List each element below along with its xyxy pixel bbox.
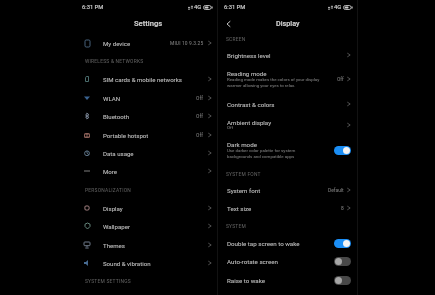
- button[interactable]: Raise to wake: [218, 271, 357, 289]
- button[interactable]: WLAN: [71, 89, 217, 107]
- button[interactable]: Brightness level: [218, 46, 357, 64]
- staticText: PERSONALIZATION: [85, 187, 132, 193]
- button[interactable]: Bluetooth: [71, 107, 217, 125]
- staticText: Off: [196, 95, 204, 101]
- staticText: Display: [103, 205, 208, 212]
- staticText: Off: [196, 132, 204, 138]
- staticText: Double tap screen to wake: [227, 240, 357, 247]
- staticText: SYSTEM FONT: [226, 171, 261, 177]
- button[interactable]: Back: [223, 18, 234, 29]
- staticText: WLAN: [103, 95, 196, 102]
- staticText: Data usage: [103, 150, 208, 157]
- staticText: Bluetooth: [103, 113, 196, 120]
- staticText: Display: [276, 19, 300, 27]
- staticText: SCREEN: [226, 36, 246, 42]
- staticText: Off: [227, 125, 234, 130]
- staticText: 6:31 PM: [224, 4, 246, 11]
- button[interactable]: Wallpaper: [71, 217, 217, 235]
- staticText: Reading mode: [227, 70, 357, 77]
- staticText: 6:31 PM: [82, 4, 104, 11]
- staticText: Text size: [227, 205, 357, 212]
- staticText: Sound & vibration: [103, 260, 208, 267]
- staticText: Raise to wake: [227, 277, 357, 284]
- staticText: Auto-rotate screen: [227, 258, 357, 265]
- button[interactable]: Auto-rotate screen: [218, 252, 357, 270]
- staticText: Ambient display: [227, 119, 357, 126]
- staticText: 8: [341, 205, 344, 211]
- staticText: Off: [196, 113, 204, 119]
- staticText: Contrast & colors: [227, 101, 357, 108]
- button[interactable]: Display: [71, 199, 217, 217]
- button[interactable]: Ambient display: [218, 113, 357, 131]
- staticText: System font: [227, 187, 357, 194]
- button[interactable]: Themes: [71, 236, 217, 254]
- staticText: SYSTEM: [226, 223, 246, 229]
- button[interactable]: SIM cards & mobile networks: [71, 70, 217, 88]
- staticText: Settings: [134, 19, 163, 28]
- button[interactable]: [334, 276, 351, 285]
- button[interactable]: [334, 239, 351, 248]
- staticText: More: [103, 168, 208, 175]
- button[interactable]: [334, 146, 351, 155]
- staticText: Use darker color palette for system back…: [227, 148, 296, 159]
- button[interactable]: System font: [218, 181, 357, 199]
- staticText: 4G: [334, 4, 342, 11]
- button[interactable]: More: [71, 162, 217, 180]
- button[interactable]: Data usage: [71, 144, 217, 162]
- button[interactable]: Contrast & colors: [218, 95, 357, 113]
- button[interactable]: Sound & vibration: [71, 254, 217, 272]
- staticText: MIUI 10 9.3.25: [170, 40, 204, 46]
- staticText: Reading mode makes the colors of your di…: [227, 77, 320, 88]
- button[interactable]: Portable hotspot: [71, 126, 217, 144]
- staticText: Brightness level: [227, 52, 357, 59]
- staticText: SYSTEM SETTINGS: [85, 278, 131, 284]
- button[interactable]: Dark mode: [218, 135, 357, 153]
- button[interactable]: Reading mode: [218, 64, 357, 82]
- button[interactable]: [334, 257, 351, 266]
- staticText: WIRELESS & NETWORKS: [85, 58, 144, 64]
- staticText: SIM cards & mobile networks: [103, 76, 208, 83]
- staticText: Dark mode: [227, 141, 357, 148]
- staticText: Portable hotspot: [103, 132, 196, 139]
- staticText: Themes: [103, 242, 208, 249]
- button[interactable]: Text size: [218, 199, 357, 217]
- staticText: Wallpaper: [103, 223, 208, 230]
- button[interactable]: Double tap screen to wake: [218, 234, 357, 252]
- button[interactable]: My device: [71, 34, 217, 52]
- staticText: Off: [337, 76, 344, 82]
- staticText: 4G: [194, 4, 202, 11]
- staticText: My device: [103, 40, 170, 47]
- staticText: Default: [328, 187, 344, 193]
